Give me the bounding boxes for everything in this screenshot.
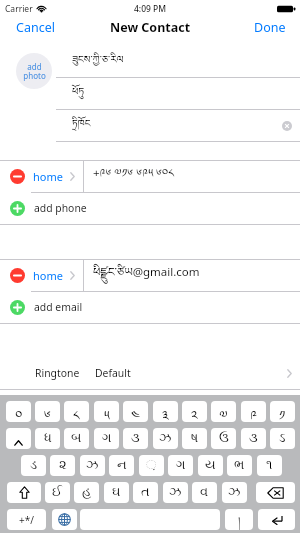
button[interactable]: ઽ [270,428,295,449]
button[interactable]: ય [198,455,223,476]
staticText: Carrier [5,3,33,15]
button[interactable]: Done [244,14,300,41]
button[interactable]: ઝ [163,482,188,503]
staticText: ༧ [219,401,228,422]
button[interactable]: Ringtone [0,357,300,389]
staticText: ઝ [169,486,182,499]
staticText: ཟུངས་ཀྱི་ཅ་རིལ [72,48,124,76]
button[interactable]: ༢ [182,401,207,422]
button[interactable]: ષ [182,428,207,449]
staticText: ༢ [191,401,198,422]
staticText: બ [71,432,82,445]
staticText: Default [95,366,131,380]
button[interactable]: ཕོཏུ [56,78,300,110]
button[interactable]: ༩ [241,401,266,422]
button[interactable]: ༥ [94,401,119,422]
button[interactable]: વ [192,482,217,503]
staticText: ય [205,459,216,472]
button[interactable]: ઝ [153,428,178,449]
button[interactable]: add phone [0,192,300,224]
button[interactable]: ૩ [123,428,148,449]
button[interactable]: બ [64,428,89,449]
button[interactable]: ભ [227,455,252,476]
button[interactable]: ઼ [139,455,164,476]
staticText: ༦ [44,401,51,422]
staticText: ༤ [131,401,140,422]
staticText: home [33,268,63,283]
staticText: Done [254,19,286,36]
button[interactable]: ત [133,482,158,503]
button[interactable]: Remove [0,160,300,192]
staticText: ༩ [250,401,257,422]
staticText: વ [200,486,209,499]
staticText: ગ [176,459,186,472]
button[interactable]: ગ [94,428,119,449]
button[interactable]: ༡ [270,401,295,422]
button[interactable]: ། [225,509,253,530]
button[interactable]: Return [258,509,295,530]
button[interactable]: ༨ [64,401,89,422]
staticText: ༠ [15,401,23,422]
staticText: ༨ [73,401,80,422]
staticText: New Contact [110,19,191,36]
button[interactable]: ༦ [35,401,60,422]
button[interactable]: Cancel [0,14,65,41]
button[interactable]: ૨ [50,455,75,476]
staticText: ༡ [279,401,286,422]
staticText: હ [82,486,92,499]
staticText: ભ [234,459,245,472]
button[interactable]: Space [80,509,220,530]
other: Clear text [282,121,292,131]
staticText: home [33,169,63,184]
button[interactable]: Remove [0,259,300,291]
button[interactable]: ન [109,455,134,476]
staticText: ષ [191,432,199,445]
button[interactable]: ડ [21,455,46,476]
button[interactable]: ધ [35,428,60,449]
button[interactable]: ૩ [241,428,266,449]
button[interactable]: Shift [6,428,31,449]
staticText: +༩༦ ༧༡༦ ༦༩༥ ༦༠༨ [93,160,175,192]
button[interactable]: Shift [7,482,41,503]
other: Remove [10,268,25,283]
staticText: ઈ [52,486,63,499]
staticText: ધ [44,432,52,445]
staticText: ઝ [159,432,172,445]
staticText: ઽ [279,432,286,445]
button[interactable]: +*/ [7,509,46,530]
staticText: ઼ [146,459,157,472]
button[interactable]: add email [0,291,300,323]
button[interactable]: ઝ [222,482,247,503]
staticText: +*/ [19,513,34,527]
staticText: ૨ [59,459,67,472]
button[interactable]: ઝ [80,455,105,476]
staticText: ཕིཛྫུང་ཙིཡ@gmail.com [93,259,200,291]
staticText: ઝ [86,459,99,472]
staticText: add email [34,300,83,314]
staticText: ༣ [162,401,169,422]
button[interactable]: add photo [16,53,52,89]
button[interactable]: ༤ [123,401,148,422]
button[interactable]: ગ [168,455,193,476]
other: Remove [10,169,25,184]
button[interactable]: ૧ [257,455,282,476]
staticText: ༥ [104,401,110,422]
other: Shift [14,430,23,448]
button[interactable]: ཟུངས་ཀྱི་ཅ་རིལ [56,46,300,78]
staticText: Ringtone [35,366,80,380]
button[interactable]: હ [74,482,99,503]
button[interactable]: Switch keyboard [52,509,77,530]
button[interactable]: Backspace [256,482,295,503]
button[interactable]: ઘ [104,482,129,503]
button[interactable]: ઈ [45,482,70,503]
button[interactable]: ༣ [153,401,178,422]
staticText: ཏྲིཁོང [72,112,91,140]
button[interactable]: ༧ [211,401,236,422]
button[interactable]: ༠ [6,401,31,422]
staticText: 4:09 PM [134,3,167,15]
button[interactable]: ઉ [211,428,236,449]
staticText: ઘ [112,486,121,499]
button[interactable]: ཏྲིཁོང [56,110,300,142]
staticText: add phone [34,201,87,215]
staticText: ઉ [219,432,229,445]
